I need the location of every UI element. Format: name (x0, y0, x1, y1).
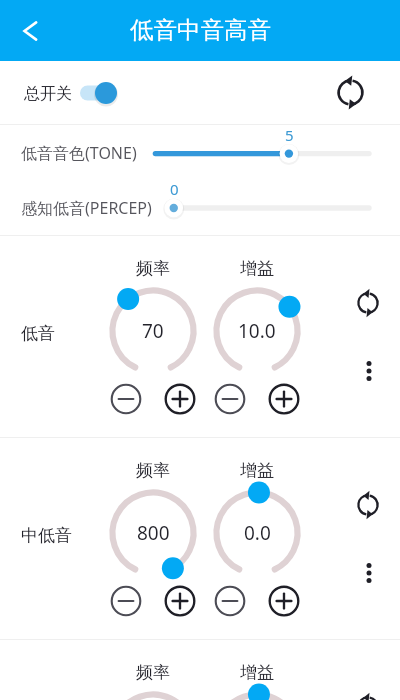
button[interactable]: Decrease (108, 583, 144, 619)
button[interactable]: Decrease (212, 381, 248, 417)
button[interactable]: Reset all (328, 70, 372, 114)
staticText: 频率 (136, 460, 170, 481)
staticText: 增益 (240, 258, 274, 279)
button[interactable]: Increase (266, 381, 302, 417)
button[interactable]: 低音音色(TONE) (0, 125, 400, 180)
button[interactable]: Reset band (346, 281, 389, 324)
button[interactable]: Reset band (346, 483, 389, 526)
staticText: 低音中音高音 (130, 15, 271, 45)
button[interactable]: Knob 10.0 (207, 281, 307, 381)
staticText: 频率 (136, 662, 170, 683)
staticText: 总开关 (24, 84, 72, 104)
button[interactable]: Decrease (212, 583, 248, 619)
staticText: 低音音色(TONE) (21, 142, 137, 164)
button[interactable]: More options (347, 551, 390, 594)
button[interactable]: Back (6, 0, 56, 61)
staticText: 低音 (21, 323, 55, 344)
button[interactable]: Increase (162, 583, 198, 619)
button[interactable]: Knob 70 (103, 281, 203, 381)
staticText: 5 (285, 125, 294, 145)
staticText: 感知低音(PERCEP) (21, 197, 152, 219)
button[interactable]: Knob 0.0 (207, 483, 307, 583)
staticText: 中低音 (21, 525, 72, 546)
button[interactable]: Knob 0.0 (207, 685, 307, 700)
staticText: 0 (170, 179, 179, 199)
button[interactable]: Increase (162, 381, 198, 417)
button[interactable]: Decrease (108, 381, 144, 417)
button[interactable]: Master switch (78, 76, 124, 110)
button[interactable]: Reset band (346, 685, 389, 700)
staticText: 800 (137, 520, 170, 546)
staticText: 70 (142, 318, 164, 344)
button[interactable]: Knob 2000 (103, 685, 203, 700)
button[interactable]: 感知低音(PERCEP) (0, 180, 400, 235)
button[interactable]: Knob 800 (103, 483, 203, 583)
button[interactable]: More options (347, 349, 390, 392)
staticText: 增益 (240, 460, 274, 481)
staticText: 频率 (136, 258, 170, 279)
staticText: 增益 (240, 662, 274, 683)
staticText: 0.0 (244, 520, 271, 546)
button[interactable]: Increase (266, 583, 302, 619)
staticText: 10.0 (238, 318, 276, 344)
